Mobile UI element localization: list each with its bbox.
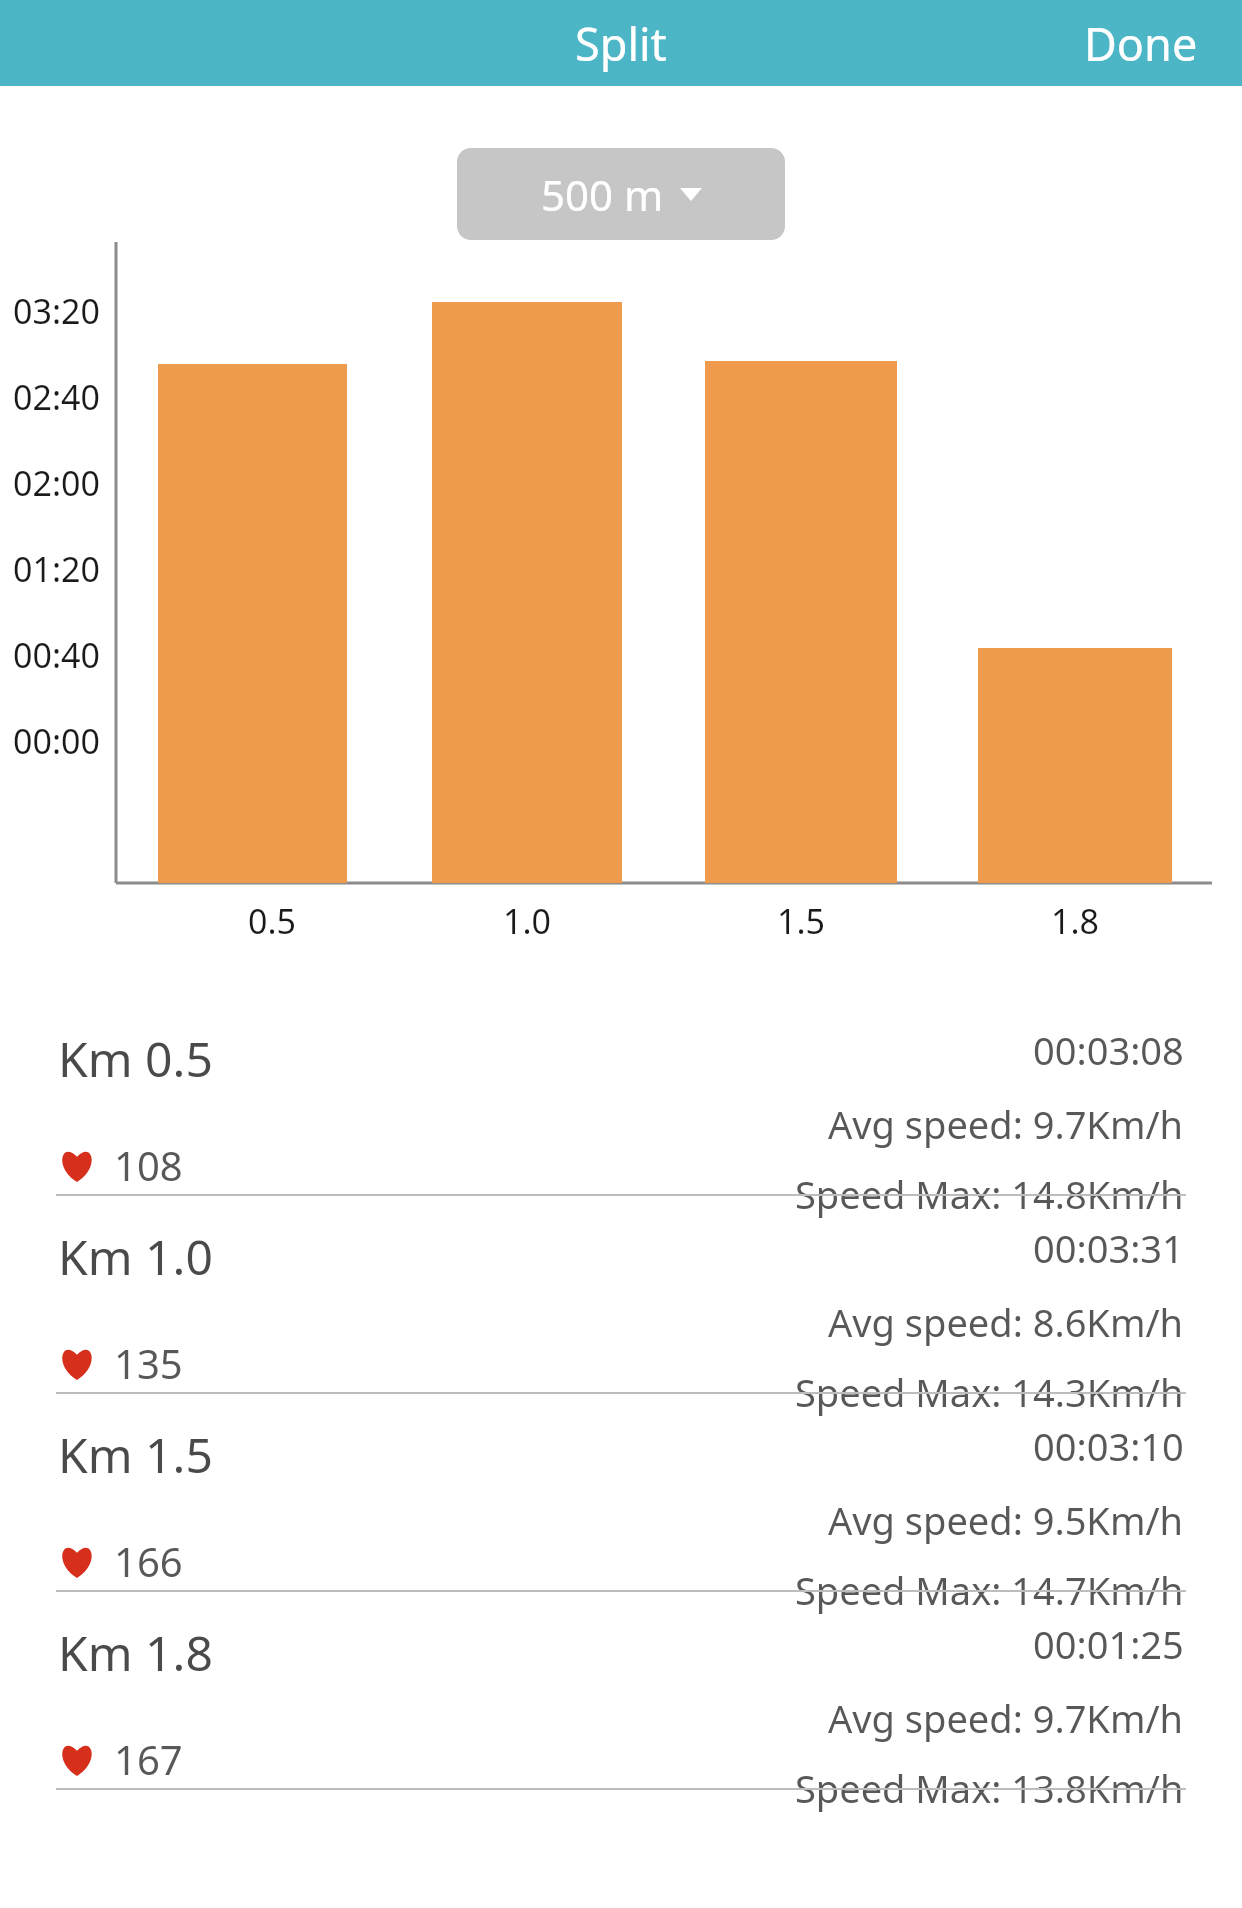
staticText: 500 m xyxy=(541,166,664,223)
staticText: Km 1.0 xyxy=(58,1224,213,1289)
staticText: 1.5 xyxy=(777,898,826,944)
button[interactable]: Km 1.5 xyxy=(0,1394,1242,1592)
staticText: Avg speed: 8.6Km/h xyxy=(828,1296,1184,1348)
staticText: Km 1.5 xyxy=(58,1422,213,1487)
button[interactable]: Done xyxy=(1040,1,1242,86)
staticText: Split xyxy=(575,13,667,74)
staticText: Avg speed: 9.7Km/h xyxy=(828,1692,1184,1744)
button[interactable]: Km 1.0 xyxy=(0,1196,1242,1394)
staticText: Speed Max: 14.7Km/h xyxy=(795,1564,1184,1616)
staticText: Avg speed: 9.5Km/h xyxy=(828,1494,1184,1546)
staticText: 00:00 xyxy=(13,718,100,764)
staticText: Speed Max: 14.3Km/h xyxy=(795,1366,1184,1418)
staticText: 01:20 xyxy=(13,546,100,592)
staticText: 02:00 xyxy=(13,460,100,506)
staticText: 1.0 xyxy=(503,898,552,944)
staticText: Done xyxy=(1084,13,1198,74)
staticText: 0.5 xyxy=(248,898,297,944)
staticText: 167 xyxy=(114,1732,183,1786)
staticText: Speed Max: 13.8Km/h xyxy=(795,1762,1184,1814)
button[interactable]: Km 1.8 xyxy=(0,1592,1242,1790)
staticText: Avg speed: 9.7Km/h xyxy=(828,1098,1184,1150)
staticText: Km 0.5 xyxy=(58,1026,213,1091)
staticText: 166 xyxy=(114,1534,183,1588)
staticText: 00:03:31 xyxy=(1033,1222,1184,1274)
other: Heart rate xyxy=(58,1346,96,1380)
staticText: 00:03:08 xyxy=(1033,1024,1184,1076)
other: Heart rate xyxy=(58,1148,96,1182)
button[interactable]: Km 0.5 xyxy=(0,998,1242,1196)
staticText: 00:01:25 xyxy=(1033,1618,1184,1670)
button[interactable]: 500 m xyxy=(457,148,785,240)
staticText: 00:40 xyxy=(13,632,100,678)
staticText: Speed Max: 14.8Km/h xyxy=(795,1168,1184,1220)
other: Heart rate xyxy=(58,1544,96,1578)
staticText: 02:40 xyxy=(13,374,100,420)
staticText: 03:20 xyxy=(13,288,100,334)
staticText: Km 1.8 xyxy=(58,1620,213,1685)
staticText: 135 xyxy=(114,1336,183,1390)
staticText: 00:03:10 xyxy=(1033,1420,1184,1472)
other: Heart rate xyxy=(58,1742,96,1776)
staticText: 108 xyxy=(114,1138,183,1192)
staticText: 1.8 xyxy=(1051,898,1100,944)
